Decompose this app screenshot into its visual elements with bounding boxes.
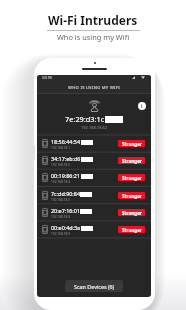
staticText: 20:e7:16:01 bbox=[51, 207, 80, 214]
button[interactable]: Device info bbox=[138, 102, 146, 110]
button[interactable]: Stranger bbox=[118, 209, 145, 216]
button[interactable]: 34:17:eb:d6 bbox=[37, 152, 151, 169]
staticText: 192.168.18.1 bbox=[51, 146, 70, 150]
button[interactable]: 7c:dd:90:84 bbox=[37, 187, 151, 204]
staticText: Stranger bbox=[122, 210, 142, 216]
staticText: 00:19:86:21 bbox=[51, 172, 81, 179]
staticText: Stranger bbox=[122, 175, 142, 181]
staticText: 192.168.18.8 bbox=[51, 215, 70, 219]
staticText: WHO IS USING MY WIFI bbox=[68, 85, 121, 91]
staticText: 192.168.18.5 bbox=[51, 198, 70, 202]
staticText: 34:17:eb:d6 bbox=[51, 155, 81, 162]
staticText: Stranger bbox=[122, 227, 142, 233]
staticText: Wi-Fi Intruders bbox=[48, 12, 138, 28]
staticText: 00:e0:4d:3a bbox=[51, 224, 81, 231]
staticText: Scan Devices (6) bbox=[74, 283, 115, 290]
button[interactable]: Stranger bbox=[118, 140, 145, 147]
staticText: Stranger bbox=[122, 158, 142, 164]
staticText: Stranger bbox=[122, 141, 142, 147]
staticText: 192.168.18.2 bbox=[51, 163, 70, 167]
button[interactable]: 20:e7:16:01 bbox=[37, 204, 151, 221]
staticText: Who is using my Wifi bbox=[57, 32, 130, 42]
button[interactable]: Stranger bbox=[118, 157, 145, 164]
button[interactable]: Scan Devices (6) bbox=[65, 280, 123, 292]
staticText: 192.168.18.62 bbox=[81, 125, 108, 130]
staticText: 3:02 PM bbox=[42, 76, 52, 80]
button[interactable]: 18:56:44:54 bbox=[37, 135, 151, 152]
button[interactable]: Stranger bbox=[118, 226, 145, 233]
staticText: 192.168.18.9 bbox=[51, 232, 70, 236]
button[interactable]: 00:e0:4d:3a bbox=[37, 221, 151, 238]
staticText: 192.168.18.4 bbox=[51, 180, 70, 184]
button[interactable]: 00:19:86:21 bbox=[37, 169, 151, 186]
button[interactable]: Stranger bbox=[118, 192, 145, 199]
staticText: 7e:29:d3:1c bbox=[65, 114, 105, 124]
button[interactable]: Stranger bbox=[118, 174, 145, 181]
staticText: 18:56:44:54 bbox=[51, 138, 81, 145]
staticText: 7c:dd:90:84 bbox=[51, 190, 80, 197]
staticText: i bbox=[141, 103, 143, 110]
staticText: Stranger bbox=[122, 193, 142, 199]
